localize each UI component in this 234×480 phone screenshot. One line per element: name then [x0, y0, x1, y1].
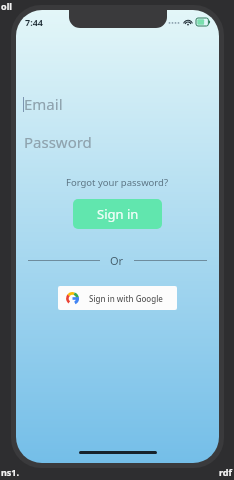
staticText: Forgot your password?	[66, 176, 169, 189]
button[interactable]: Sign in	[73, 199, 162, 229]
staticText: Email	[24, 94, 63, 114]
staticText: Password	[24, 132, 92, 152]
staticText: 7:44	[25, 16, 43, 28]
staticText: Sign in with Google	[89, 293, 163, 304]
staticText: ns1.	[1, 466, 20, 478]
staticText: rdf	[219, 466, 233, 478]
staticText: Sign in	[97, 205, 139, 223]
staticText: oll	[1, 0, 12, 12]
button[interactable]: Forgot your password?	[62, 174, 173, 191]
staticText: Or	[110, 253, 124, 268]
button[interactable]: Password	[16, 131, 219, 153]
button[interactable]: Email	[16, 93, 219, 115]
button[interactable]: Sign in with Google	[58, 286, 177, 310]
